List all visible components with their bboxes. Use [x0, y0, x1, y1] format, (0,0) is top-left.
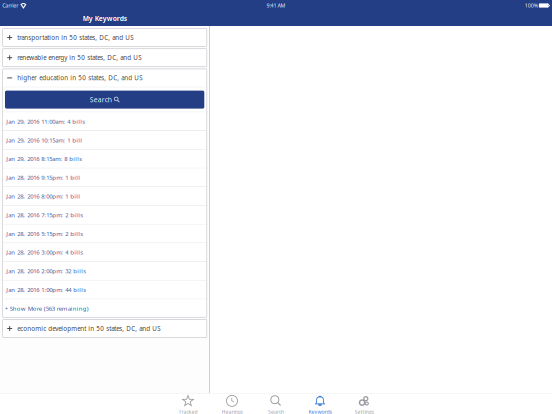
staticText: Search — [90, 95, 112, 104]
staticText: Keywords — [308, 408, 331, 414]
button[interactable]: Hearings — [210, 394, 254, 414]
button[interactable]: Jan 28, 2016 7:15pm: 2 bills — [2, 206, 207, 224]
staticText: Carrier — [2, 2, 18, 9]
button[interactable]: Jan 28, 2016 5:15pm: 2 bills — [2, 224, 207, 243]
button[interactable]: Jan 28, 2016 8:00pm: 1 bill — [2, 187, 207, 205]
button[interactable]: renewable energy in 50 states, DC, and U… — [2, 49, 207, 67]
staticText: Tracked — [178, 408, 197, 414]
staticText: Jan 28, 2016 9:15pm: 1 bill — [6, 173, 80, 181]
staticText: economic development in 50 states, DC, a… — [17, 324, 160, 333]
button[interactable]: Jan 28, 2016 3:00pm: 4 bills — [2, 243, 207, 261]
staticText: 9:41 AM — [266, 2, 285, 9]
button[interactable]: Keywords — [298, 394, 342, 414]
staticText: Jan 29, 2016 11:00am: 4 bills — [6, 117, 85, 125]
button[interactable]: higher education in 50 states, DC, and U… — [2, 69, 207, 87]
button[interactable]: transportation in 50 states, DC, and US — [2, 28, 207, 46]
button[interactable]: economic development in 50 states, DC, a… — [2, 319, 207, 337]
staticText: Jan 29, 2016 10:15am: 1 bill — [6, 136, 82, 144]
staticText: Jan 29, 2016 8:15am: 8 bills — [6, 155, 82, 163]
button[interactable]: Jan 29, 2016 11:00am: 4 bills — [2, 112, 207, 130]
staticText: Settings — [354, 408, 373, 414]
staticText: 100% — [525, 2, 538, 9]
button[interactable]: Jan 28, 2016 2:00pm: 32 bills — [2, 262, 207, 280]
button[interactable]: Search — [2, 87, 207, 112]
button[interactable]: + Show More (563 remaining) — [2, 299, 207, 317]
staticText: Hearings — [221, 408, 242, 414]
staticText: renewable energy in 50 states, DC, and U… — [17, 53, 141, 62]
button[interactable]: Jan 29, 2016 10:15am: 1 bill — [2, 131, 207, 149]
staticText: Jan 28, 2016 7:15pm: 2 bills — [6, 211, 83, 219]
staticText: Jan 28, 2016 2:00pm: 32 bills — [6, 267, 86, 275]
staticText: + Show More (563 remaining) — [5, 304, 89, 312]
staticText: higher education in 50 states, DC, and U… — [17, 74, 142, 82]
staticText: Search — [268, 408, 284, 414]
staticText: transportation in 50 states, DC, and US — [17, 33, 133, 42]
staticText: Jan 28, 2016 5:15pm: 2 bills — [6, 230, 83, 238]
button[interactable]: Tracked — [166, 394, 210, 414]
button[interactable]: Jan 28, 2016 9:15pm: 1 bill — [2, 168, 207, 187]
staticText: Jan 28, 2016 8:00pm: 1 bill — [6, 192, 80, 200]
button[interactable]: Search — [254, 394, 298, 414]
button[interactable]: Jan 28, 2016 1:00pm: 44 bills — [2, 281, 207, 299]
staticText: Jan 28, 2016 3:00pm: 4 bills — [6, 248, 83, 256]
staticText: Jan 28, 2016 1:00pm: 44 bills — [6, 286, 86, 294]
button[interactable]: Jan 29, 2016 8:15am: 8 bills — [2, 150, 207, 168]
staticText: My Keywords — [83, 14, 127, 23]
button[interactable]: Settings — [342, 394, 386, 414]
